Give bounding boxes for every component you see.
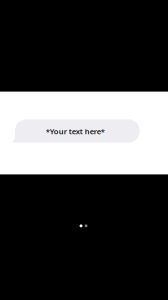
button[interactable]: *Your text here* bbox=[12, 119, 140, 143]
button[interactable]: Page 1 of 2 bbox=[80, 224, 87, 227]
staticText: *Your text here* bbox=[46, 126, 105, 137]
